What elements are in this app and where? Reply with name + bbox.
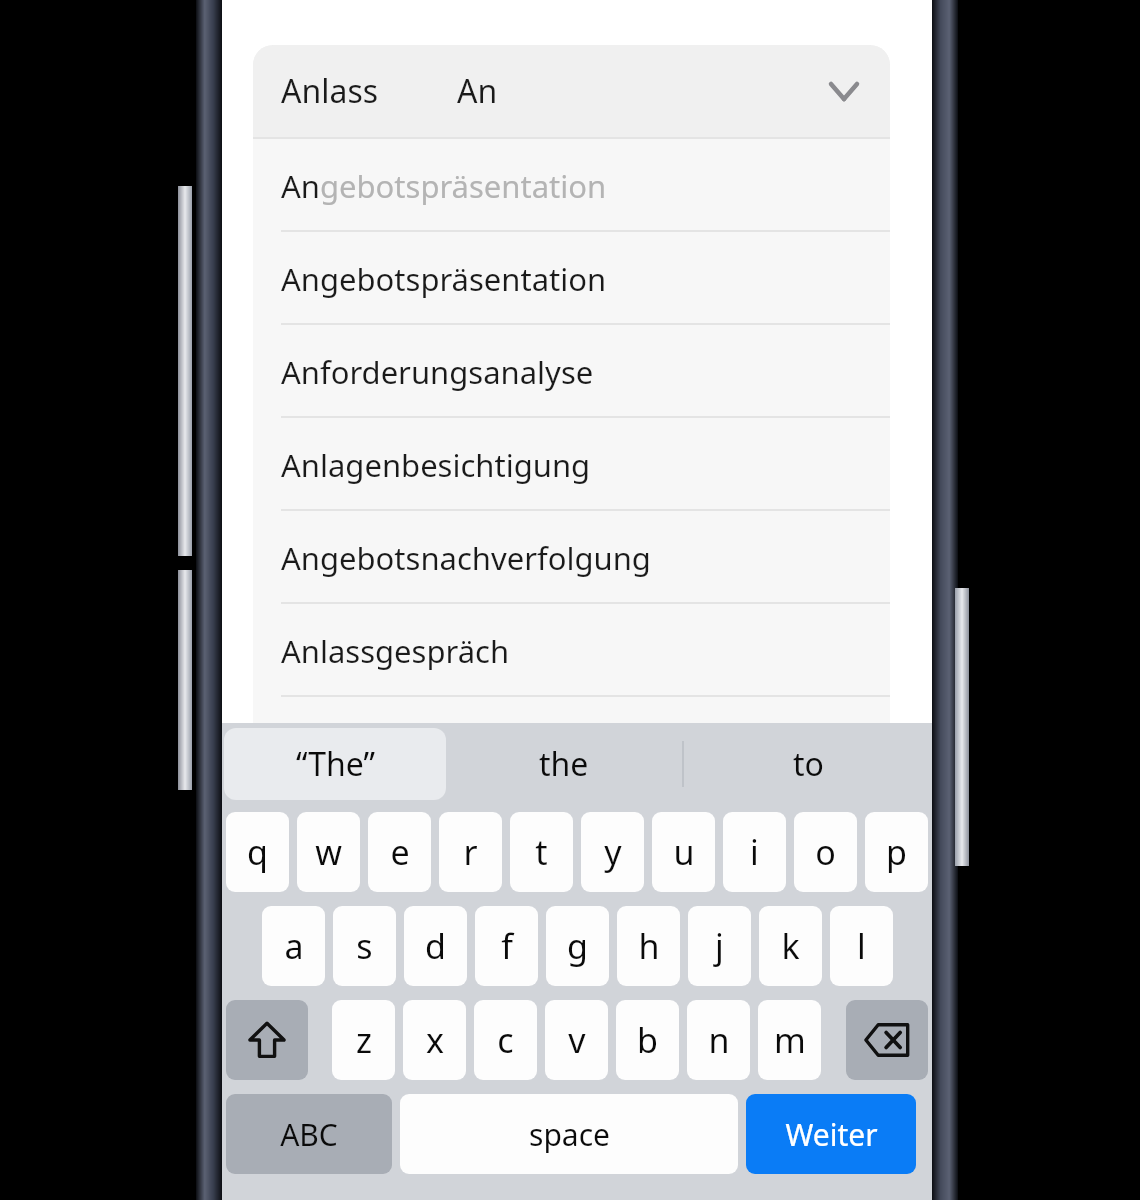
staticText: j: [715, 923, 724, 969]
button[interactable]: Anlass: [253, 45, 890, 137]
staticText: w: [315, 829, 342, 875]
staticText: c: [497, 1017, 514, 1063]
button[interactable]: m: [758, 1000, 821, 1080]
button[interactable]: u: [652, 812, 715, 892]
button[interactable]: “The”: [224, 728, 446, 800]
button[interactable]: Angebotsnachverfolgung: [253, 511, 890, 604]
staticText: g: [567, 923, 588, 969]
staticText: n: [708, 1017, 730, 1063]
button[interactable]: b: [616, 1000, 679, 1080]
button[interactable]: n: [687, 1000, 750, 1080]
staticText: Anlassgespräch: [281, 630, 510, 672]
staticText: f: [501, 923, 513, 969]
button[interactable]: g: [546, 906, 609, 986]
staticText: o: [815, 829, 836, 875]
button[interactable]: Angebotspräsentation: [253, 232, 890, 325]
staticText: Angebotspräsentation: [281, 258, 607, 300]
button[interactable]: f: [475, 906, 538, 986]
staticText: q: [247, 829, 268, 875]
button[interactable]: l: [830, 906, 893, 986]
button[interactable]: q: [226, 812, 289, 892]
button[interactable]: h: [617, 906, 680, 986]
button[interactable]: i: [723, 812, 786, 892]
button[interactable]: the: [446, 723, 682, 805]
button[interactable]: s: [333, 906, 396, 986]
button[interactable]: p: [865, 812, 928, 892]
button[interactable]: Angebotspräsentation: [253, 139, 890, 232]
button[interactable]: Anlassgespräch: [253, 604, 890, 697]
button[interactable]: Anforderungsanalyse: [253, 325, 890, 418]
staticText: space: [529, 1114, 610, 1155]
staticText: l: [857, 923, 866, 969]
other: Collapse: [824, 71, 864, 111]
staticText: Weiter: [785, 1114, 878, 1155]
button[interactable]: to: [684, 723, 932, 805]
button[interactable]: Anlagenbesichtigung: [253, 418, 890, 511]
button[interactable]: o: [794, 812, 857, 892]
staticText: z: [356, 1017, 372, 1063]
button[interactable]: r: [439, 812, 502, 892]
staticText: x: [426, 1017, 444, 1063]
button[interactable]: k: [759, 906, 822, 986]
button[interactable]: j: [688, 906, 751, 986]
staticText: m: [774, 1017, 806, 1063]
button[interactable]: w: [297, 812, 360, 892]
staticText: b: [637, 1017, 658, 1063]
staticText: p: [886, 829, 907, 875]
button[interactable]: z: [332, 1000, 395, 1080]
staticText: Anlagenbesichtigung: [281, 444, 591, 486]
button[interactable]: e: [368, 812, 431, 892]
staticText: to: [793, 742, 824, 786]
staticText: r: [463, 829, 478, 875]
button[interactable]: Backspace: [846, 1000, 928, 1080]
staticText: d: [425, 923, 446, 969]
staticText: v: [568, 1017, 586, 1063]
button[interactable]: v: [545, 1000, 608, 1080]
staticText: i: [750, 829, 759, 875]
staticText: Angebotspräsentation: [281, 165, 607, 207]
button[interactable]: Weiter: [746, 1094, 916, 1174]
button[interactable]: y: [581, 812, 644, 892]
staticText: u: [673, 829, 695, 875]
button[interactable]: t: [510, 812, 573, 892]
button[interactable]: d: [404, 906, 467, 986]
staticText: “The”: [296, 742, 375, 786]
staticText: the: [539, 742, 589, 786]
staticText: Anforderungsanalyse: [281, 351, 594, 393]
staticText: s: [356, 923, 373, 969]
staticText: Angebotsnachverfolgung: [281, 537, 651, 579]
staticText: k: [781, 923, 800, 969]
button[interactable]: space: [400, 1094, 738, 1174]
button[interactable]: a: [262, 906, 325, 986]
staticText: y: [604, 829, 622, 875]
staticText: An: [457, 69, 498, 113]
button[interactable]: c: [474, 1000, 537, 1080]
button[interactable]: Shift: [226, 1000, 308, 1080]
button[interactable]: ABC: [226, 1094, 392, 1174]
staticText: Anlass: [281, 69, 379, 113]
staticText: e: [390, 829, 410, 875]
staticText: ABC: [280, 1114, 338, 1155]
staticText: a: [284, 923, 304, 969]
staticText: h: [638, 923, 660, 969]
staticText: t: [535, 829, 548, 875]
button[interactable]: x: [403, 1000, 466, 1080]
